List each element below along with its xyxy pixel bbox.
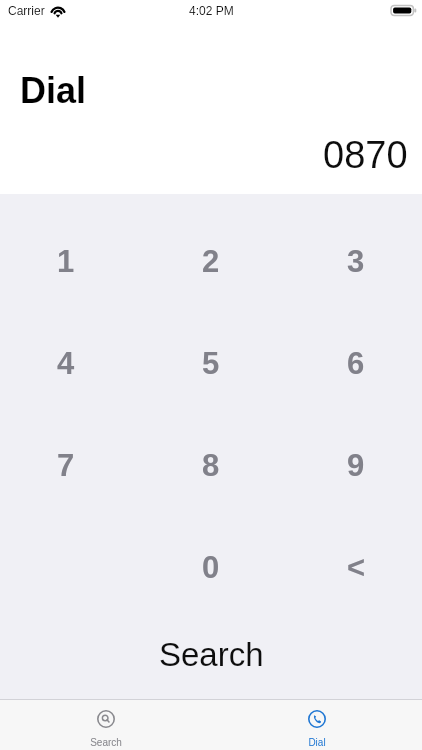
staticText: 0 — [202, 550, 220, 585]
button[interactable]: Key 0 — [151, 516, 271, 618]
other: Battery full — [391, 5, 416, 16]
staticText: 4 — [57, 346, 75, 381]
staticText: 2 — [202, 244, 220, 279]
button[interactable]: Key 5 — [151, 312, 271, 414]
staticText: Carrier — [8, 4, 45, 17]
button[interactable]: Key 8 — [151, 414, 271, 516]
button[interactable]: Key 6 — [296, 312, 416, 414]
staticText: < — [347, 550, 366, 585]
staticText: 6 — [347, 346, 365, 381]
staticText: 7 — [57, 448, 75, 483]
staticText: 3 — [347, 244, 365, 279]
staticText: Search — [90, 737, 122, 748]
other: Wi-Fi signal — [50, 5, 66, 17]
button[interactable]: Key 2 — [151, 210, 271, 312]
staticText: 9 — [347, 448, 365, 483]
button[interactable]: Key 3 — [296, 210, 416, 312]
button[interactable]: Key 4 — [6, 312, 126, 414]
staticText: Dial — [20, 70, 87, 110]
staticText: 5 — [202, 346, 220, 381]
button[interactable]: Dial — [211, 700, 422, 750]
staticText: Dial — [308, 737, 326, 748]
button[interactable]: Key 9 — [296, 414, 416, 516]
button[interactable]: Backspace — [296, 516, 416, 618]
staticText: 1 — [57, 244, 75, 279]
staticText: 4:02 PM — [189, 4, 234, 17]
button[interactable]: Key 7 — [6, 414, 126, 516]
button[interactable]: Search — [0, 614, 422, 699]
staticText: 0870 — [323, 134, 408, 176]
staticText: 8 — [202, 448, 220, 483]
staticText: Search — [159, 636, 264, 673]
button[interactable]: Key 1 — [6, 210, 126, 312]
button[interactable]: Search — [0, 700, 211, 750]
